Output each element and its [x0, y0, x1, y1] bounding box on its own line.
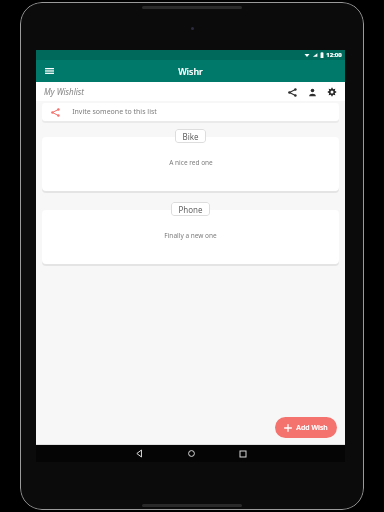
staticText: My Wishlist — [44, 86, 84, 97]
staticText: A nice red one — [169, 158, 213, 167]
staticText: Bike — [182, 131, 199, 142]
button[interactable]: Invite someone to this list — [42, 103, 339, 121]
staticText: Wishr — [178, 65, 203, 77]
button[interactable]: Share wishlist — [284, 84, 300, 100]
button[interactable]: Back — [113, 445, 165, 462]
staticText: 12:00 — [326, 51, 342, 59]
button[interactable]: Finally a new one — [42, 210, 339, 264]
staticText: Phone — [178, 204, 203, 215]
button[interactable]: Recent apps — [217, 445, 269, 462]
staticText: Invite someone to this list — [72, 107, 157, 117]
button[interactable]: Add Wish — [275, 417, 337, 438]
button[interactable]: Home — [165, 445, 217, 462]
staticText: Finally a new one — [164, 231, 217, 240]
button[interactable]: Phone — [171, 202, 210, 216]
button[interactable]: Manage members — [304, 84, 320, 100]
button[interactable]: Settings — [324, 84, 340, 100]
button[interactable]: A nice red one — [42, 137, 339, 191]
staticText: Add Wish — [296, 423, 328, 433]
button[interactable]: Bike — [175, 129, 206, 143]
button[interactable]: Open navigation menu — [36, 60, 62, 82]
